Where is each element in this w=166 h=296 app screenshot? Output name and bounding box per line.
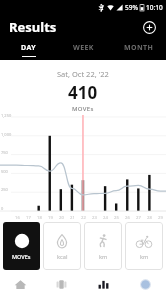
staticText: 27 [136,215,141,221]
staticText: km [140,253,149,260]
button[interactable]: Profile [124,272,166,296]
staticText: 26 [125,215,130,221]
staticText: Sat, Oct 22, '22 [57,69,109,79]
button[interactable]: Home [0,272,41,296]
staticText: 23 [92,215,97,221]
button[interactable]: Results [82,272,124,296]
staticText: DAY [21,43,36,53]
staticText: 750 [1,150,8,155]
button[interactable]: MONTH [111,40,166,60]
staticText: 1,000 [1,132,12,137]
staticText: 16 [15,215,20,221]
staticText: 17 [26,215,31,221]
button[interactable]: WEEK [56,40,111,60]
staticText: 1,250 [1,113,12,118]
staticText: MOVEs [12,253,31,260]
staticText: 410 [68,81,98,104]
button[interactable]: Add [140,18,158,36]
staticText: 10:10 [146,3,163,12]
button[interactable]: Devices [41,272,82,296]
staticText: 59% [125,3,138,12]
button[interactable]: km [84,222,122,270]
staticText: 24 [103,215,108,221]
staticText: 0 [1,206,4,211]
staticText: MONTH [124,43,154,53]
staticText: 22 [81,215,86,221]
button[interactable]: km [125,222,163,270]
staticText: 20 [59,215,64,221]
staticText: 500 [1,169,8,174]
staticText: 19 [48,215,53,221]
staticText: 25 [114,215,119,221]
button[interactable]: DAY [0,40,56,60]
button[interactable]: MOVEs [3,222,40,270]
button[interactable]: kcal [43,222,81,270]
staticText: WEEK [73,43,94,53]
staticText: 29 [158,215,163,221]
staticText: kcal [57,253,68,260]
staticText: 250 [1,187,8,192]
staticText: MOVEs [72,105,94,113]
staticText: 21 [70,215,75,221]
staticText: 28 [147,215,152,221]
staticText: km [99,253,108,260]
staticText: Results [9,18,57,36]
staticText: 18 [37,215,42,221]
